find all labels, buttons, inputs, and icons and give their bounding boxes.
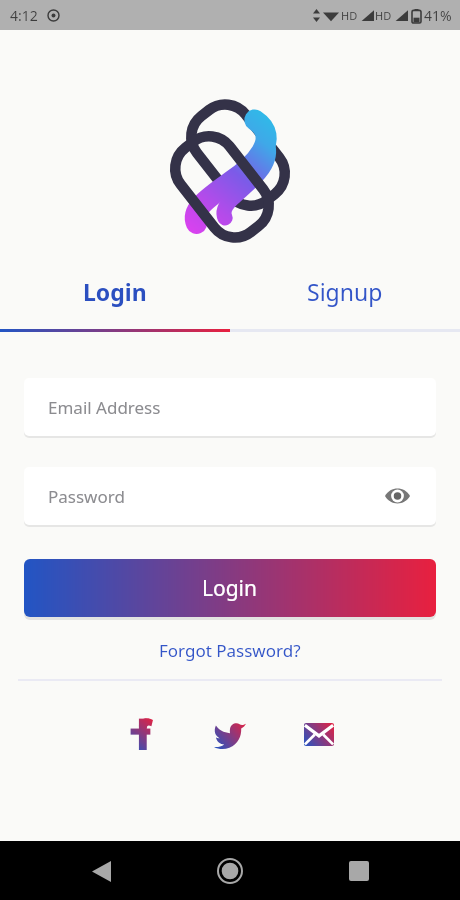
staticText: HD <box>341 8 358 23</box>
staticText: 41% <box>424 6 452 25</box>
button[interactable]: Email Address <box>24 378 436 436</box>
button[interactable]: Forgot Password? <box>149 633 311 668</box>
staticText: HD <box>375 8 392 23</box>
staticText: Email Address <box>48 396 412 419</box>
button[interactable]: Back <box>73 843 129 899</box>
button[interactable]: Login <box>0 270 230 313</box>
button[interactable]: Login <box>24 559 436 617</box>
button[interactable]: Sign in with Email <box>293 708 345 760</box>
button[interactable]: Recent apps <box>331 843 387 899</box>
staticText: Signup <box>307 276 383 307</box>
button[interactable]: Home <box>202 843 258 899</box>
button[interactable]: Sign in with Facebook <box>115 708 167 760</box>
button[interactable]: Sign in with Twitter <box>204 708 256 760</box>
staticText: Login <box>83 276 147 307</box>
button[interactable]: Password <box>24 467 436 525</box>
staticText: Login <box>202 574 258 603</box>
button[interactable]: Signup <box>230 270 460 313</box>
button[interactable]: Show password <box>382 481 412 511</box>
staticText: Password <box>48 485 382 508</box>
staticText: Forgot Password? <box>159 639 301 662</box>
staticText: 4:12 <box>10 6 38 25</box>
